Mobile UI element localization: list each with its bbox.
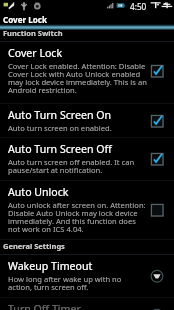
staticText: Auto Unlock bbox=[8, 185, 69, 199]
staticText: Auto turn screen on enabled. bbox=[8, 123, 112, 133]
button[interactable]: Auto Turn Screen On bbox=[0, 104, 174, 137]
staticText: Auto Turn Screen On bbox=[8, 108, 112, 122]
staticText: Cover Lock bbox=[8, 46, 63, 60]
other: Auto Turn Screen Off toggle bbox=[147, 149, 167, 169]
staticText: General Settings bbox=[3, 241, 65, 251]
button[interactable]: Wakeup Timeout bbox=[0, 255, 174, 297]
staticText: Cover Lock bbox=[3, 14, 48, 25]
button[interactable]: Auto Turn Screen Off bbox=[0, 138, 174, 180]
other: Cover Lock toggle bbox=[147, 61, 167, 81]
staticText: Auto turn screen off enabled. It can pau… bbox=[8, 157, 147, 176]
staticText: Auto unlock after screen on. Attention: … bbox=[8, 200, 147, 235]
other: Turn Off Timer options bbox=[147, 305, 167, 310]
other: Wakeup Timeout options bbox=[147, 266, 167, 286]
staticText: Auto Turn Screen Off bbox=[8, 142, 112, 156]
button[interactable]: Cover Lock bbox=[0, 42, 174, 103]
other: Auto Turn Screen On toggle bbox=[147, 111, 167, 131]
staticText: 4:50 bbox=[130, 1, 147, 12]
staticText: Cover Lock enabled. Attention: Disable C… bbox=[8, 61, 147, 96]
other: Auto Unlock toggle bbox=[147, 200, 167, 220]
staticText: Turn Off Timer bbox=[8, 302, 81, 310]
staticText: Function Switch bbox=[3, 28, 63, 38]
staticText: Wakeup Timeout bbox=[8, 259, 93, 273]
button[interactable]: Turn Off Timer bbox=[0, 298, 174, 310]
button[interactable]: Auto Unlock bbox=[0, 181, 174, 239]
staticText: How long after wake up with no action, t… bbox=[8, 274, 147, 293]
